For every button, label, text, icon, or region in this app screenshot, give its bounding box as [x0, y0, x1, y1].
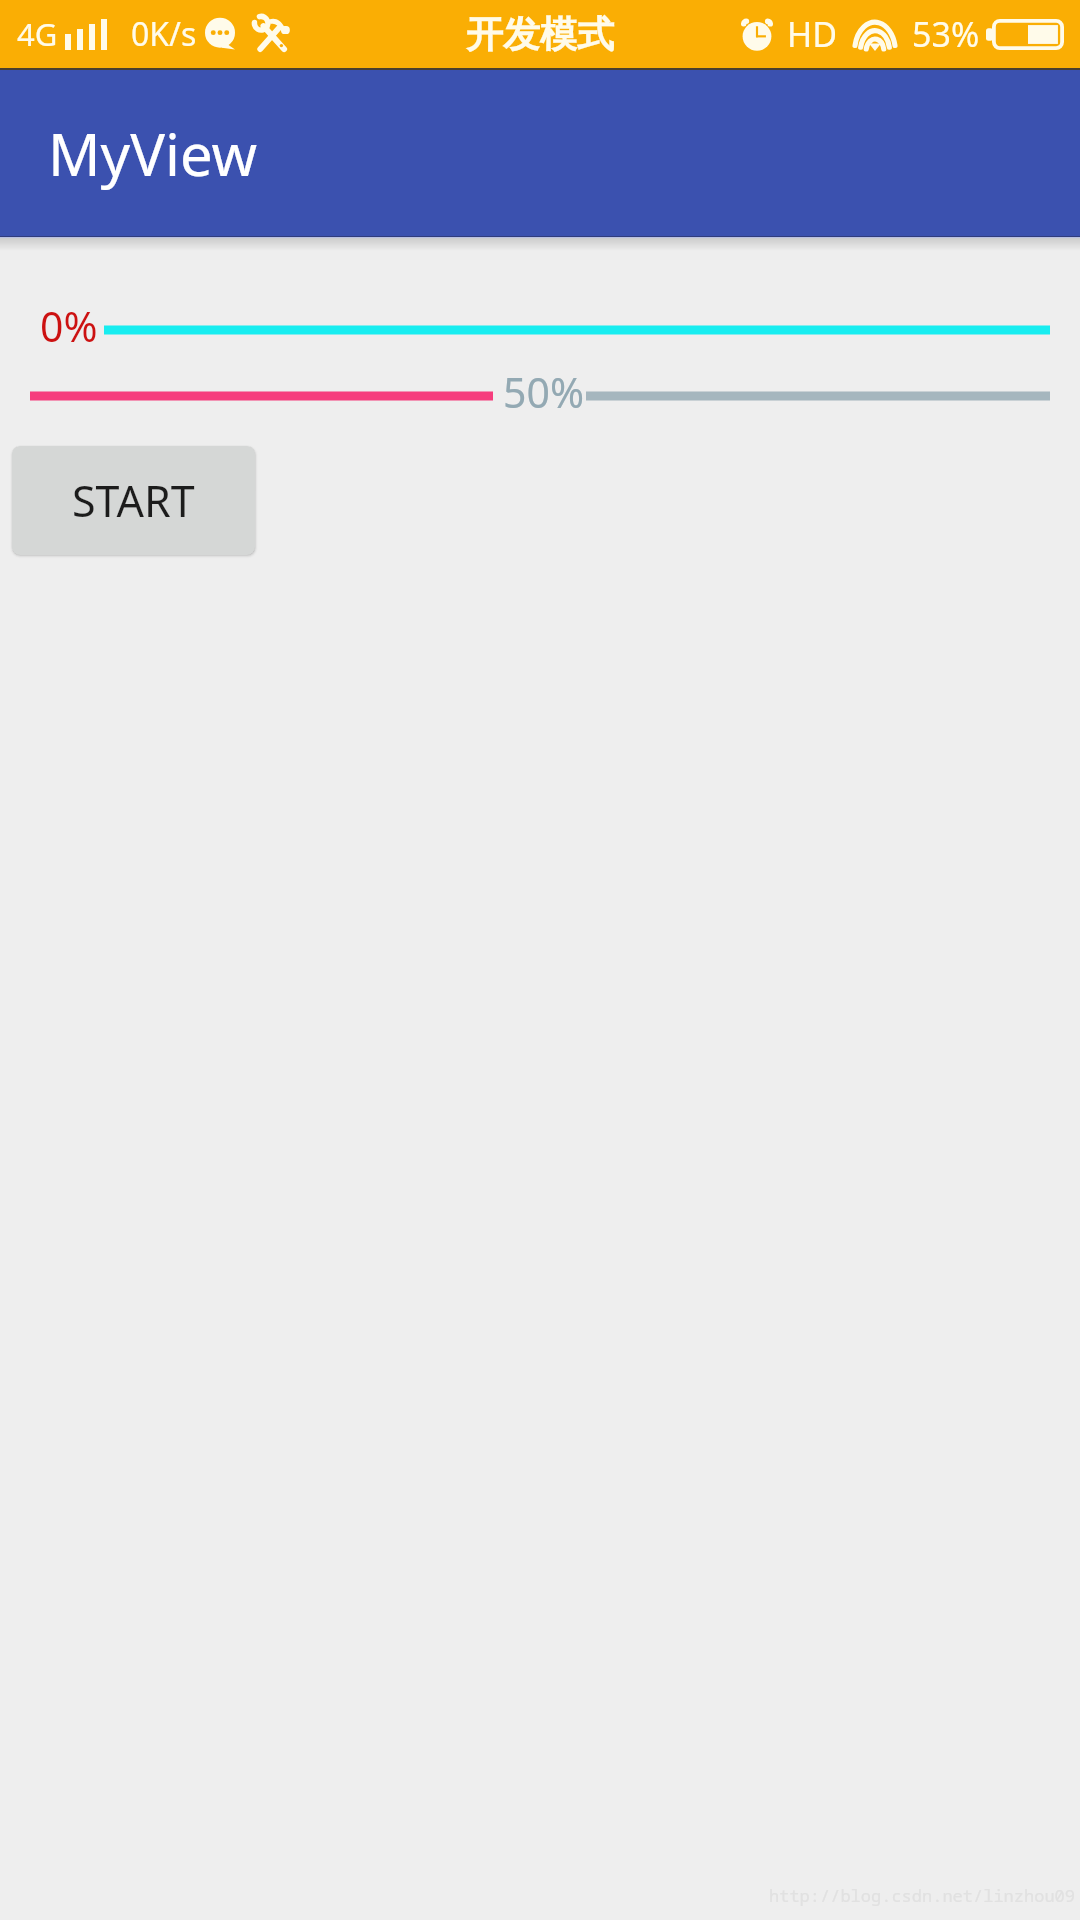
button[interactable]: START [12, 446, 255, 555]
staticText: HD [787, 11, 838, 57]
staticText: 50% [503, 364, 584, 420]
staticText: START [72, 471, 195, 530]
staticText: 53% [912, 11, 980, 57]
staticText: MyView [48, 114, 258, 193]
staticText: http://blog.csdn.net/linzhou09 [769, 1884, 1075, 1907]
staticText: 4G [17, 13, 58, 55]
staticText: 0K/s [131, 12, 197, 56]
staticText: 0% [40, 298, 98, 354]
staticText: 开发模式 [466, 11, 614, 58]
